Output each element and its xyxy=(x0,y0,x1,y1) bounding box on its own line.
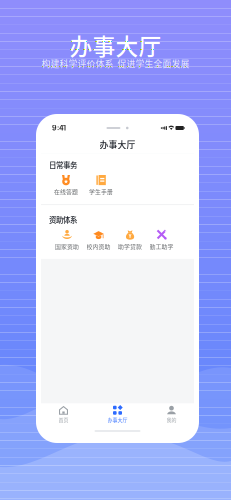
staticText: 9:41 xyxy=(52,124,66,132)
staticText: 校内资助 xyxy=(86,242,110,250)
staticText: 学生手册 xyxy=(89,187,113,196)
staticText: 在线答题 xyxy=(54,187,78,196)
button[interactable]: 助学贷款 xyxy=(114,229,146,251)
staticText: 办事大厅 xyxy=(99,138,135,151)
button[interactable]: 办事大厅 xyxy=(94,406,140,423)
button[interactable]: 我的 xyxy=(148,406,194,423)
staticText: 国家资助 xyxy=(55,242,79,250)
staticText: 助学贷款 xyxy=(118,242,142,250)
staticText: 首页 xyxy=(58,416,68,423)
button[interactable]: 学生手册 xyxy=(83,174,118,196)
staticText: 办事大厅 xyxy=(107,416,127,423)
button[interactable]: 国家资助 xyxy=(51,229,83,251)
staticText: 办事大厅 xyxy=(69,29,161,61)
staticText: 我的 xyxy=(166,416,176,423)
staticText: 资助体系 xyxy=(49,214,77,225)
staticText: 勤工助学 xyxy=(150,242,174,250)
staticText: 日常事务 xyxy=(49,159,77,170)
button[interactable]: 在线答题 xyxy=(48,174,83,196)
staticText: 构建科学评价体系 促进学生全面发展 xyxy=(41,57,189,70)
button[interactable]: 校内资助 xyxy=(83,229,114,251)
button[interactable]: 首页 xyxy=(40,406,86,423)
button[interactable]: 勤工助学 xyxy=(146,229,177,251)
